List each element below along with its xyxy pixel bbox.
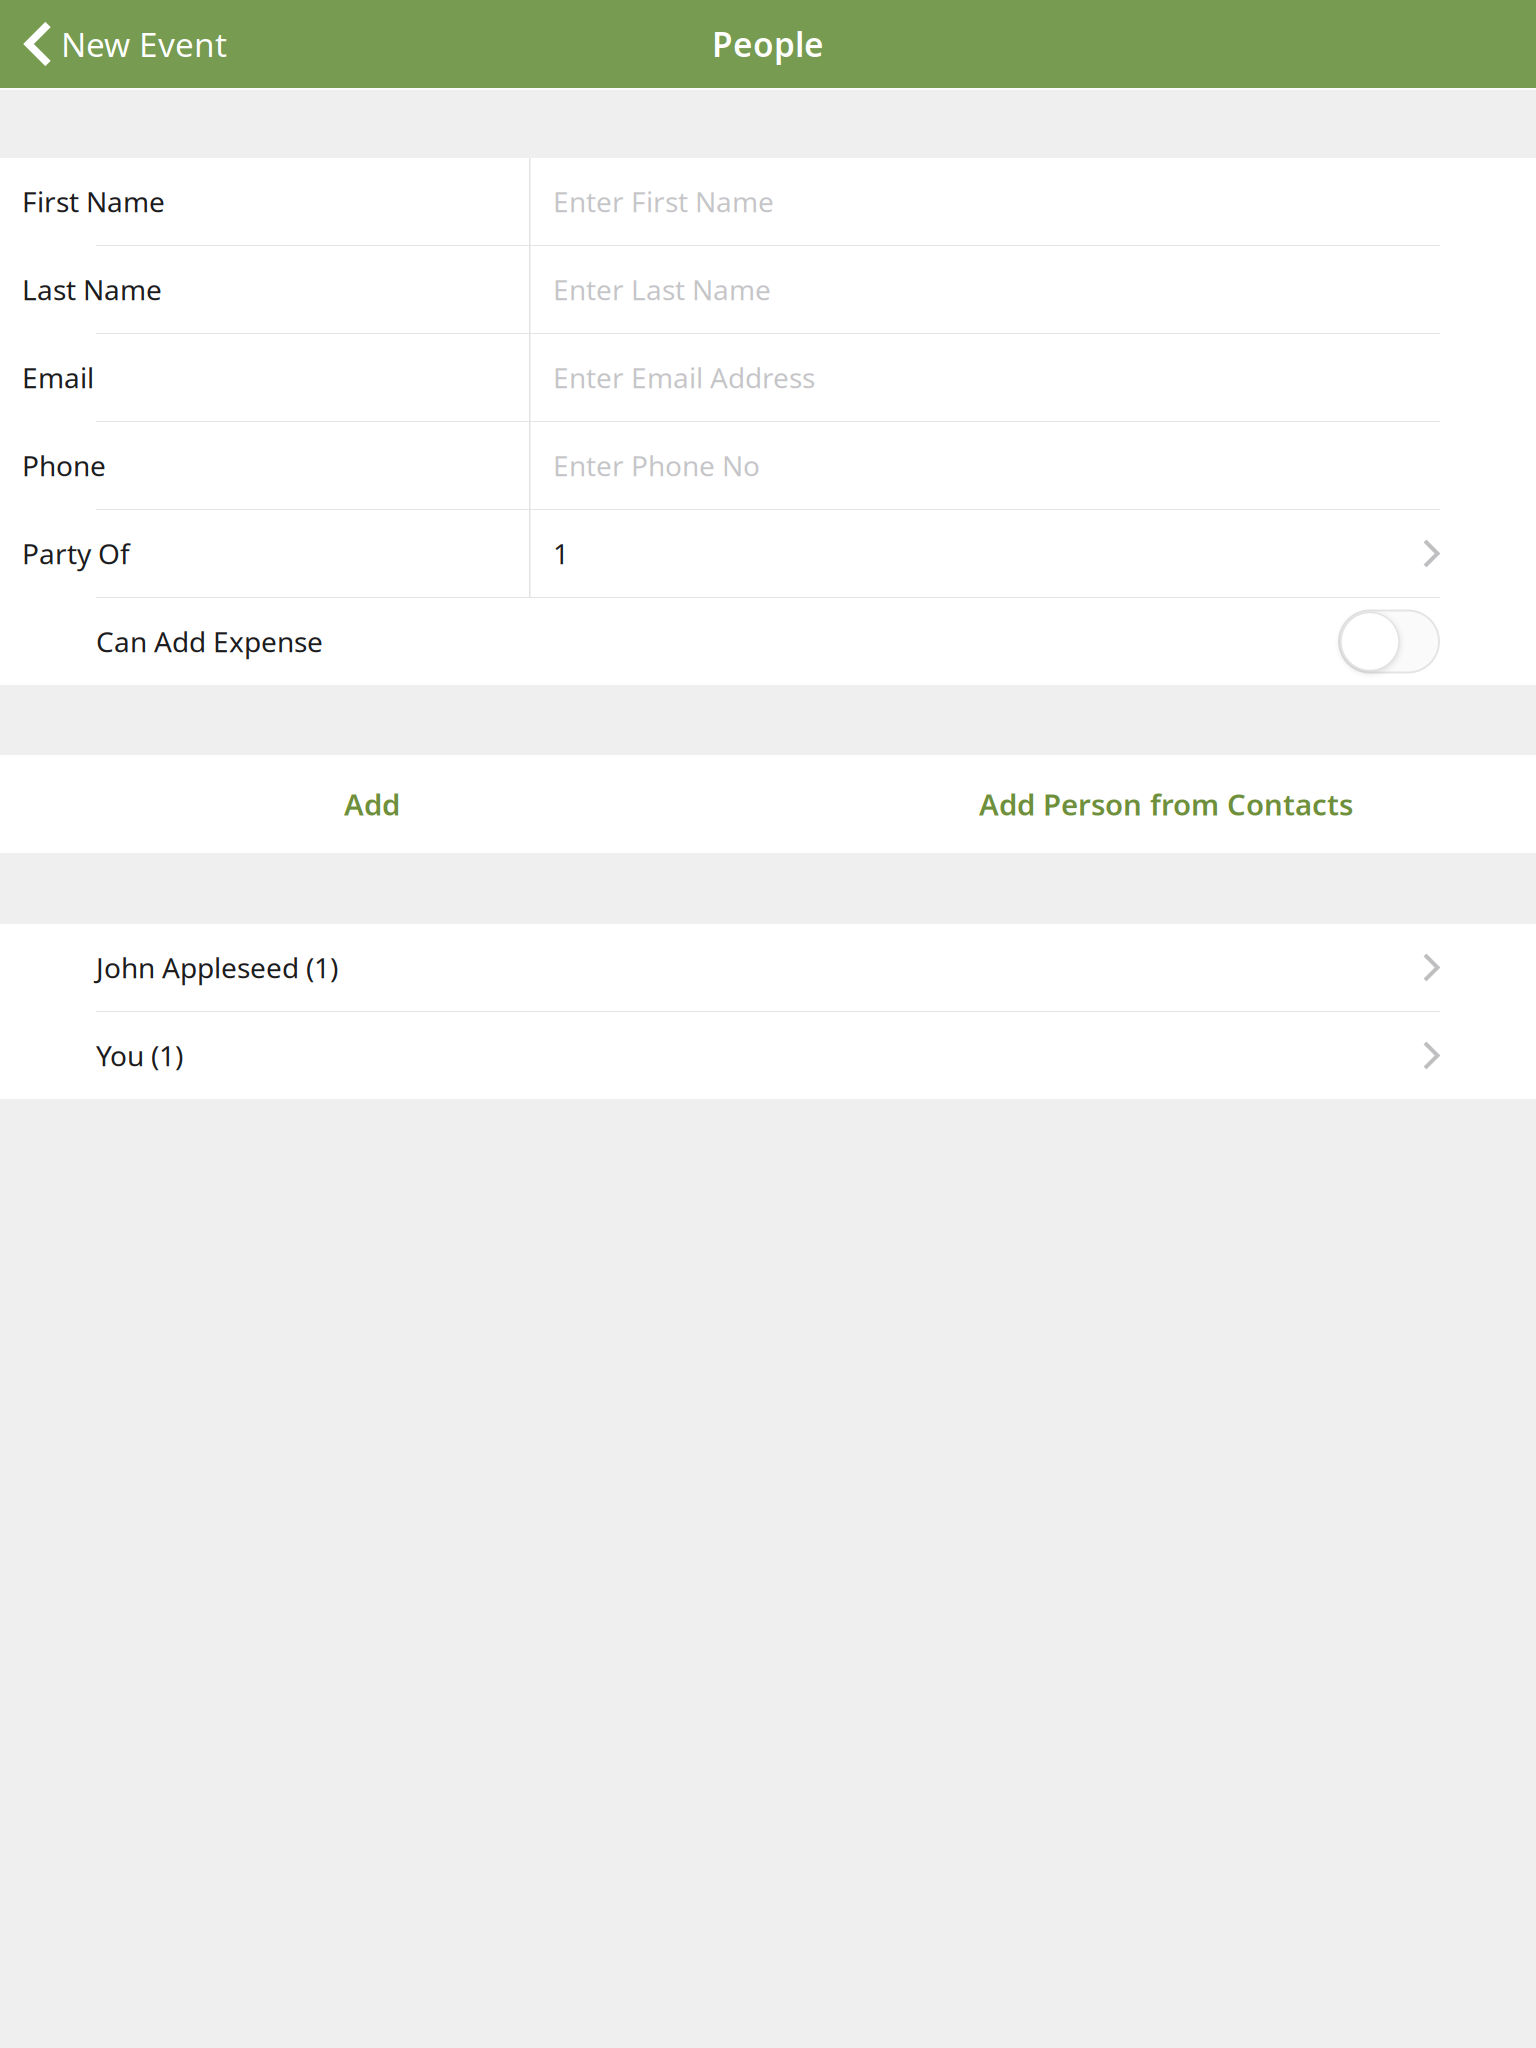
button[interactable]: Last Name — [0, 246, 1536, 333]
staticText: Add Person from Contacts — [979, 784, 1353, 823]
staticText: People — [712, 22, 824, 66]
staticText: Party Of — [22, 535, 130, 572]
staticText: John Appleseed (1) — [96, 949, 338, 986]
staticText: Enter First Name — [553, 183, 774, 220]
staticText: Last Name — [22, 271, 162, 308]
button[interactable]: New Event — [0, 1, 227, 86]
staticText: Email — [22, 359, 94, 396]
button[interactable]: First Name — [0, 158, 1536, 245]
staticText: Enter Phone No — [553, 447, 760, 484]
button[interactable]: You (1) — [0, 1012, 1536, 1099]
staticText: Can Add Expense — [96, 623, 323, 660]
button[interactable]: Can Add Expense — [0, 598, 1536, 685]
button[interactable]: Add Person from Contacts — [768, 755, 1536, 853]
staticText: 1 — [553, 535, 569, 572]
staticText: Enter Last Name — [553, 271, 771, 308]
button[interactable]: Phone — [0, 422, 1536, 509]
staticText: New Event — [61, 22, 227, 66]
button[interactable]: Add — [0, 755, 768, 853]
button[interactable]: Party Of — [0, 510, 1536, 597]
staticText: Enter Email Address — [553, 359, 815, 396]
staticText: Phone — [22, 447, 106, 484]
button[interactable]: John Appleseed (1) — [0, 924, 1536, 1011]
staticText: Add — [344, 784, 400, 823]
staticText: First Name — [22, 183, 165, 220]
button[interactable]: Email — [0, 334, 1536, 421]
staticText: You (1) — [96, 1037, 183, 1074]
